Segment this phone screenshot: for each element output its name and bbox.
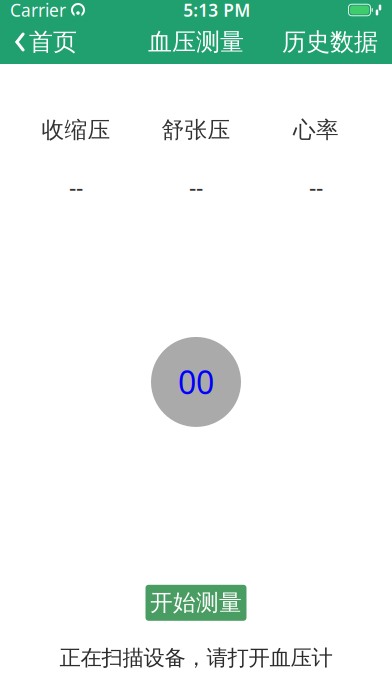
button[interactable]: 历史数据 [274,21,386,63]
staticText: 5:13 PM [183,0,250,21]
staticText: 正在扫描设备，请打开血压计 [59,645,332,671]
staticText: -- [189,172,203,202]
staticText: 收缩压 [41,116,110,144]
staticText: 首页 [29,27,77,57]
staticText: -- [309,172,323,202]
staticText: Carrier [10,0,66,21]
staticText: 开始测量 [150,589,242,617]
staticText: 舒张压 [161,116,230,144]
staticText: 历史数据 [282,27,378,57]
button[interactable]: 开始测量 [145,585,246,621]
button[interactable]: 00 [151,337,241,427]
staticText: -- [69,172,83,202]
staticText: 血压测量 [148,27,244,57]
button[interactable]: 首页 [6,21,85,63]
staticText: 心率 [293,116,339,144]
staticText: 00 [178,361,214,403]
